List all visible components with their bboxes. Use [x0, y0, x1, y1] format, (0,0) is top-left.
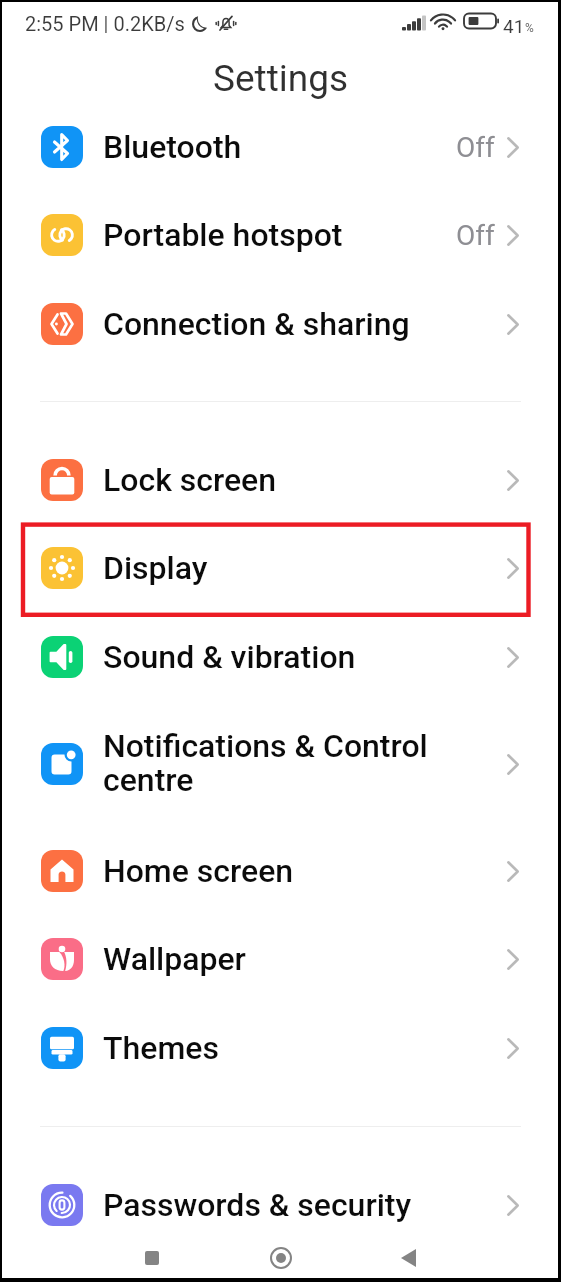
- button[interactable]: Lock screen: [0, 436, 561, 524]
- staticText: 41: [503, 15, 525, 37]
- button[interactable]: Wallpaper: [0, 915, 561, 1003]
- button[interactable]: Home: [257, 1234, 305, 1282]
- button[interactable]: Display: [0, 524, 561, 612]
- staticText: Lock screen: [103, 461, 277, 499]
- staticText: Off: [456, 219, 495, 252]
- staticText: Connection & sharing: [103, 305, 410, 343]
- staticText: Settings: [213, 57, 349, 100]
- button[interactable]: Recent apps: [128, 1234, 176, 1282]
- staticText: Bluetooth: [103, 128, 242, 166]
- staticText: Display: [103, 549, 208, 587]
- button[interactable]: Home screen: [0, 827, 561, 915]
- button[interactable]: Bluetooth: [0, 103, 561, 191]
- staticText: centre: [103, 761, 194, 799]
- staticText: 2:55 PM | 0.2KB/s: [25, 12, 185, 35]
- button[interactable]: Back: [384, 1234, 432, 1282]
- staticText: Home screen: [103, 852, 294, 890]
- button[interactable]: Themes: [0, 1004, 561, 1092]
- staticText: Portable hotspot: [103, 216, 343, 254]
- staticText: Sound & vibration: [103, 638, 356, 676]
- button[interactable]: Notifications & Control: [0, 720, 561, 808]
- button[interactable]: Passwords & security: [0, 1161, 561, 1249]
- staticText: Themes: [103, 1029, 219, 1067]
- button[interactable]: Connection & sharing: [0, 280, 561, 368]
- staticText: Wallpaper: [103, 940, 246, 978]
- button[interactable]: Portable hotspot: [0, 191, 561, 279]
- staticText: Passwords & security: [103, 1186, 412, 1224]
- staticText: Notifications & Control: [103, 727, 428, 765]
- staticText: %: [525, 21, 534, 35]
- button[interactable]: Sound & vibration: [0, 613, 561, 701]
- staticText: Off: [456, 131, 495, 164]
